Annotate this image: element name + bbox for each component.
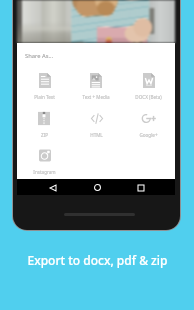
staticText: Share As...: [25, 52, 54, 60]
button[interactable]: Google+: [123, 111, 173, 147]
button[interactable]: HTML: [71, 111, 121, 147]
staticText: ZIP: [41, 132, 48, 138]
staticText: DOCX (Beta): [135, 94, 162, 100]
staticText: Instagram: [33, 169, 56, 175]
button[interactable]: Text + Media: [71, 73, 121, 109]
button[interactable]: Home: [87, 180, 107, 195]
button[interactable]: Recent apps: [131, 180, 151, 195]
staticText: HTML: [90, 132, 103, 138]
button[interactable]: Instagram: [19, 148, 69, 184]
button[interactable]: ZIP: [19, 111, 69, 147]
staticText: Plain Text: [34, 94, 55, 100]
button[interactable]: Back: [43, 180, 63, 195]
staticText: Google+: [139, 132, 158, 138]
staticText: Export to docx, pdf & zip: [27, 252, 168, 268]
button[interactable]: Plain Text: [19, 73, 69, 109]
button[interactable]: DOCX (Beta): [123, 73, 173, 109]
staticText: Text + Media: [82, 94, 110, 100]
